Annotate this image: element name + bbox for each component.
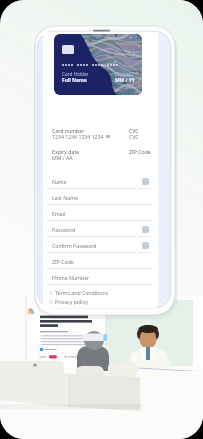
staticText: ZIP Code <box>52 258 74 265</box>
staticText: Name <box>52 178 67 185</box>
staticText: Card number <box>52 127 85 134</box>
button[interactable]: Terms and Conditions <box>49 289 109 296</box>
staticText: MM / YY <box>115 77 135 84</box>
staticText: 1234 1234 1234 1234 <box>52 133 104 140</box>
staticText: Terms and Conditions <box>55 289 109 296</box>
button[interactable]: Name <box>47 173 153 189</box>
staticText: Phone Number <box>52 274 90 281</box>
staticText: CVC <box>129 127 139 134</box>
button[interactable]: ZIP Code <box>47 253 153 269</box>
button[interactable]: Password <box>47 221 153 237</box>
staticText: Expiry date <box>52 148 80 155</box>
staticText: MM / AA <box>52 154 73 161</box>
staticText: CVC <box>129 133 139 140</box>
button[interactable]: Email <box>47 205 153 221</box>
button[interactable]: Phone Number <box>47 269 153 285</box>
staticText: Last Name <box>52 194 78 201</box>
button[interactable]: Last Name <box>47 189 153 205</box>
staticText: Password <box>52 226 76 233</box>
button[interactable]: Privacy policy <box>49 298 88 305</box>
button[interactable]: Card Holder <box>54 34 142 95</box>
staticText: ZIP Code <box>129 148 151 155</box>
button[interactable]: Confirm Password <box>47 237 153 253</box>
staticText: Expires <box>115 71 131 77</box>
staticText: Privacy policy <box>55 298 88 305</box>
staticText: Confirm Password <box>52 242 97 249</box>
staticText: Email <box>52 210 66 217</box>
staticText: Card Holder <box>62 71 89 77</box>
staticText: Full Name <box>62 77 87 84</box>
